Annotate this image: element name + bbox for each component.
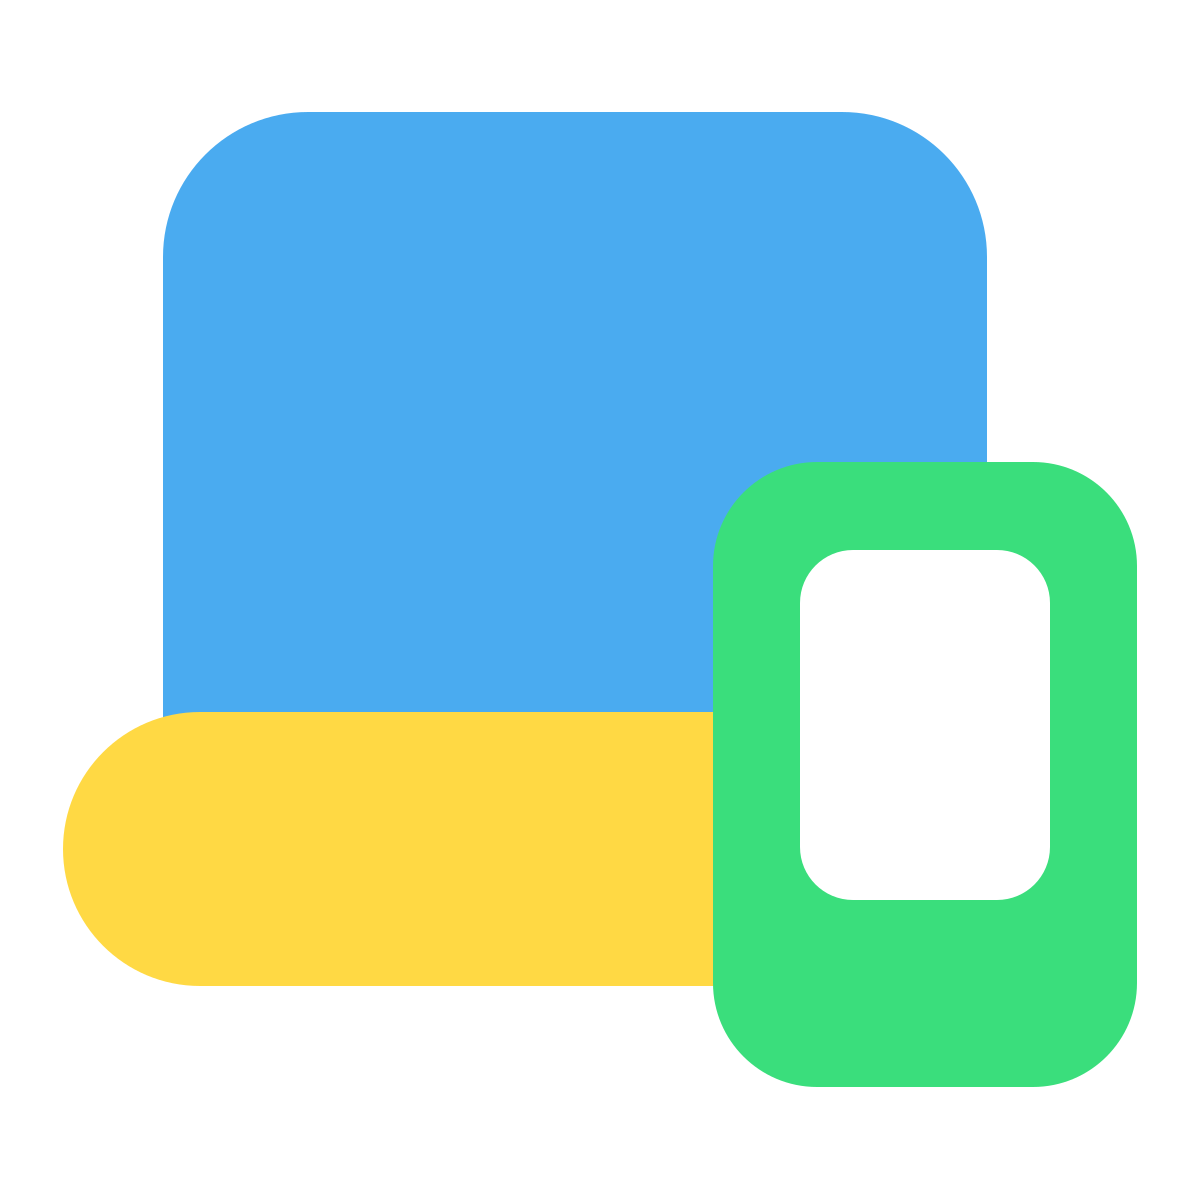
button[interactable]: Screen Mirroring xyxy=(0,0,1200,1200)
